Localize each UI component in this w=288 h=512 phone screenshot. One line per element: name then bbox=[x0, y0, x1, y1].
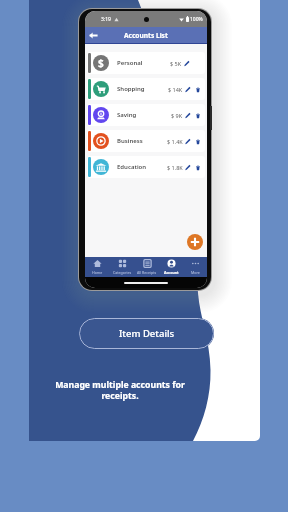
button[interactable]: Delete bbox=[193, 137, 202, 146]
button[interactable]: Edit bbox=[183, 111, 192, 120]
staticText: Home bbox=[92, 270, 103, 275]
button[interactable]: Education bbox=[87, 156, 205, 178]
staticText: Accounts List bbox=[124, 31, 168, 40]
staticText: $ 9K bbox=[171, 112, 183, 119]
button[interactable]: Edit bbox=[182, 59, 191, 68]
staticText: 100% bbox=[190, 16, 203, 23]
button[interactable]: Home bbox=[85, 257, 110, 277]
staticText: Personal bbox=[117, 59, 143, 67]
button[interactable]: Categories bbox=[110, 257, 135, 277]
staticText: $ 1.4K bbox=[167, 138, 183, 145]
button[interactable]: Delete bbox=[193, 85, 202, 94]
button[interactable]: Delete bbox=[193, 111, 202, 120]
staticText: $ 5K bbox=[170, 60, 182, 67]
button[interactable]: Add account bbox=[187, 234, 203, 250]
staticText: $ 1.8K bbox=[167, 164, 183, 171]
staticText: Education bbox=[117, 163, 147, 171]
staticText: Item Details bbox=[119, 327, 175, 340]
staticText: $ bbox=[98, 56, 104, 70]
button[interactable]: Back bbox=[88, 30, 99, 41]
staticText: Shopping bbox=[117, 85, 145, 93]
staticText: $ 14K bbox=[168, 86, 183, 93]
staticText: Manage multiple accounts for receipts. bbox=[40, 379, 200, 402]
staticText: Categories bbox=[113, 270, 132, 275]
button[interactable]: Edit bbox=[183, 85, 192, 94]
button[interactable]: Edit bbox=[183, 163, 192, 172]
staticText: 3:19 bbox=[101, 16, 111, 23]
staticText: Business bbox=[117, 137, 143, 145]
button[interactable]: Delete bbox=[193, 163, 202, 172]
button[interactable]: Account bbox=[159, 257, 183, 277]
staticText: Account bbox=[164, 270, 179, 275]
button[interactable]: All Receipts bbox=[135, 257, 159, 277]
staticText: Saving bbox=[117, 111, 137, 119]
button[interactable]: Business bbox=[87, 130, 205, 152]
button[interactable]: More bbox=[183, 257, 207, 277]
button[interactable]: Saving bbox=[87, 104, 205, 126]
button[interactable]: $ bbox=[87, 52, 205, 74]
staticText: More bbox=[191, 270, 200, 275]
button[interactable]: Shopping bbox=[87, 78, 205, 100]
button[interactable]: Edit bbox=[183, 137, 192, 146]
button[interactable]: Item Details bbox=[79, 318, 214, 349]
staticText: All Receipts bbox=[137, 270, 157, 275]
